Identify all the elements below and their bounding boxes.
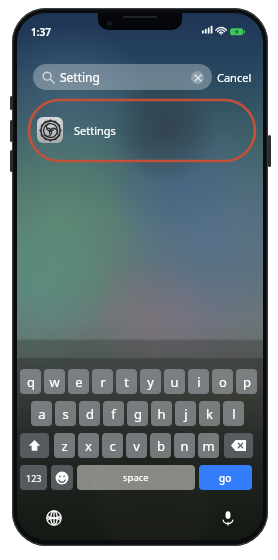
staticText: e [75, 373, 83, 391]
button[interactable]: Shift [20, 433, 49, 458]
button[interactable]: o [212, 369, 233, 394]
staticText: q [27, 373, 35, 391]
button[interactable]: a [31, 401, 52, 426]
button[interactable]: k [199, 401, 220, 426]
staticText: space [123, 471, 149, 484]
staticText: Settings [74, 123, 116, 138]
button[interactable]: w [44, 369, 65, 394]
staticText: p [243, 373, 251, 391]
button[interactable]: q [20, 369, 41, 394]
staticText: a [38, 405, 46, 423]
staticText: m [202, 437, 215, 455]
staticText: h [157, 405, 166, 423]
button[interactable]: y [140, 369, 161, 394]
staticText: v [133, 437, 140, 455]
button[interactable]: go [199, 465, 252, 490]
staticText: x [85, 437, 92, 455]
staticText: w [49, 373, 60, 391]
button[interactable]: l [223, 401, 244, 426]
button[interactable]: Settings [31, 113, 249, 147]
button[interactable]: Change keyboard [41, 505, 67, 531]
button[interactable]: j [175, 401, 196, 426]
staticText: o [219, 373, 227, 391]
button[interactable]: c [102, 433, 123, 458]
button[interactable]: h [151, 401, 172, 426]
staticText: d [86, 405, 94, 423]
staticText: 1:37 [31, 25, 51, 39]
button[interactable]: Clear search [191, 71, 204, 84]
button[interactable]: Cancel [217, 64, 261, 90]
button[interactable]: space [77, 465, 195, 490]
button[interactable]: Dictation [215, 505, 241, 531]
button[interactable]: x [78, 433, 99, 458]
button[interactable]: b [150, 433, 171, 458]
button[interactable]: i [188, 369, 209, 394]
staticText: n [180, 437, 189, 455]
staticText: b [157, 437, 165, 455]
staticText: g [134, 405, 142, 423]
staticText: y [147, 373, 154, 391]
button[interactable]: m [198, 433, 219, 458]
button[interactable]: v [126, 433, 147, 458]
button[interactable]: d [79, 401, 100, 426]
staticText: r [100, 373, 106, 391]
staticText: j [184, 405, 188, 423]
button[interactable]: z [54, 433, 75, 458]
staticText: z [61, 437, 68, 455]
staticText: s [62, 405, 69, 423]
button[interactable]: u [164, 369, 185, 394]
button[interactable]: t [116, 369, 137, 394]
staticText: Setting [60, 69, 100, 85]
button[interactable]: n [174, 433, 195, 458]
staticText: l [232, 405, 236, 423]
button[interactable]: f [103, 401, 124, 426]
button[interactable]: Setting [33, 64, 212, 90]
staticText: Cancel [217, 70, 252, 85]
button[interactable]: 123 [20, 465, 47, 490]
button[interactable]: e [68, 369, 89, 394]
staticText: k [206, 405, 213, 423]
staticText: go [219, 471, 232, 485]
button[interactable]: s [55, 401, 76, 426]
staticText: i [197, 373, 201, 391]
button[interactable]: Emoji [51, 465, 73, 490]
button[interactable]: r [92, 369, 113, 394]
staticText: c [109, 437, 116, 455]
staticText: f [111, 405, 116, 423]
staticText: 123 [26, 472, 42, 484]
staticText: t [124, 373, 129, 391]
button[interactable]: p [236, 369, 257, 394]
button[interactable]: g [127, 401, 148, 426]
button[interactable]: Backspace [224, 433, 253, 458]
staticText: u [170, 373, 179, 391]
